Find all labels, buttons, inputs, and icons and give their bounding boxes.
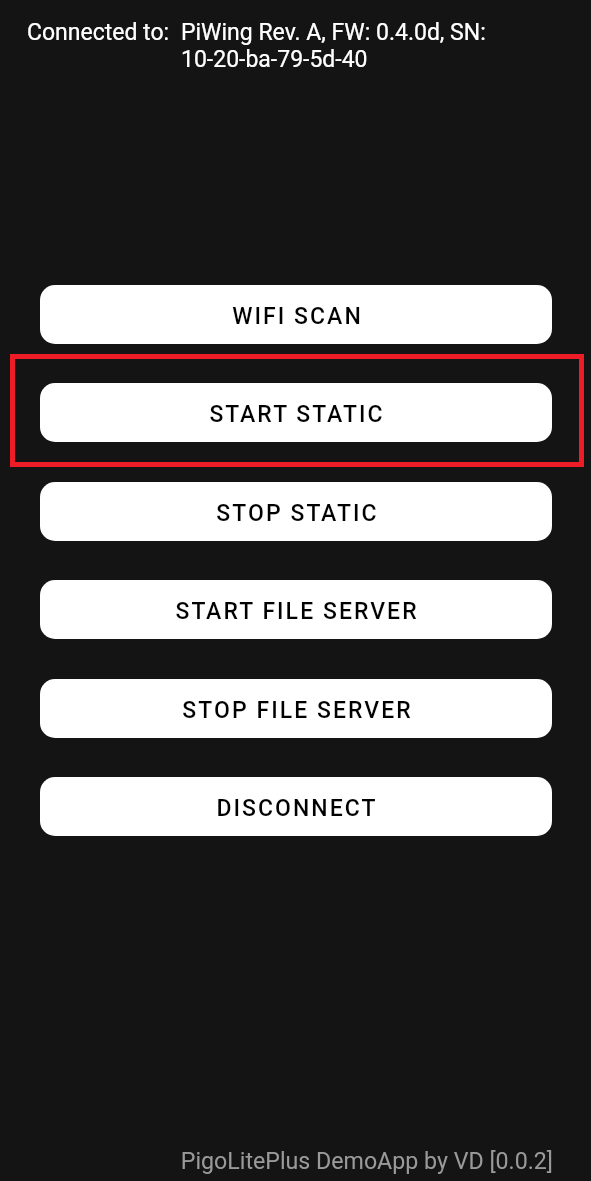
staticText: STOP STATIC	[216, 500, 379, 527]
staticText: START STATIC	[209, 401, 385, 428]
staticText: START FILE SERVER	[175, 598, 419, 625]
staticText: WIFI SCAN	[232, 303, 363, 330]
button[interactable]: STOP STATIC	[40, 482, 552, 541]
staticText: PiWing Rev. A, FW: 0.4.0d, SN: 10-20-ba-…	[181, 19, 511, 73]
staticText: PigoLitePlus DemoApp by VD [0.0.2]	[180, 1147, 553, 1174]
staticText: Connected to:	[27, 19, 170, 46]
button[interactable]: START FILE SERVER	[40, 580, 552, 639]
button[interactable]: STOP FILE SERVER	[40, 679, 552, 738]
staticText: DISCONNECT	[216, 795, 378, 822]
button[interactable]: WIFI SCAN	[40, 285, 552, 344]
staticText: STOP FILE SERVER	[182, 697, 413, 724]
button[interactable]: START STATIC	[40, 383, 552, 442]
button[interactable]: DISCONNECT	[40, 777, 552, 836]
